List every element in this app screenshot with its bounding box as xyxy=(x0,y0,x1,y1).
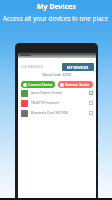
staticText: Connect Device xyxy=(28,82,53,87)
staticText: SM-A715F (nexxon) xyxy=(31,101,89,105)
staticText: Bluestacks Dual (HD1900) xyxy=(31,111,89,115)
staticText: Access all your devices in one place xyxy=(3,14,109,23)
staticText: MY DEVICES xyxy=(67,65,89,70)
staticText: FILE MANAGER xyxy=(21,65,43,69)
other: Select xyxy=(89,101,93,105)
other: Selected xyxy=(89,91,93,95)
button[interactable]: SM-A715F (nexxon) xyxy=(18,98,96,108)
staticText: Remove Device xyxy=(65,82,90,87)
button[interactable]: James Robert Vincent xyxy=(18,88,96,98)
button[interactable]: Connect Device xyxy=(21,81,55,88)
button[interactable]: Bluestacks Dual (HD1900) xyxy=(18,108,96,118)
staticText: James Robert Vincent xyxy=(31,91,89,95)
staticText: My Devices xyxy=(37,2,76,12)
other: Select xyxy=(89,111,93,115)
staticText: Device Code: 32007 xyxy=(18,73,96,77)
button[interactable]: Remove Device xyxy=(58,81,93,88)
button[interactable]: MY DEVICES xyxy=(62,63,94,71)
